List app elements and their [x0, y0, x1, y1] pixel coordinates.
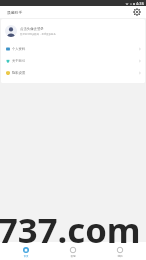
button[interactable]: 关于我们: [1, 55, 145, 67]
button[interactable]: 首页: [5, 242, 47, 257]
button[interactable]: 点击头像去登录: [1, 19, 145, 43]
staticText: 737.com: [0, 207, 141, 253]
button[interactable]: 个人资料: [1, 43, 145, 55]
staticText: 隐私设置: [12, 71, 26, 75]
button[interactable]: 我的: [99, 242, 141, 257]
staticText: 个人资料: [12, 47, 26, 51]
staticText: 我的: [117, 254, 123, 257]
staticText: 登录后可同步数据，享受更多服务: [20, 33, 56, 36]
button[interactable]: 隐私设置: [1, 67, 145, 79]
staticText: 首页: [23, 254, 29, 257]
button[interactable]: Settings: [132, 7, 142, 17]
staticText: 关于我们: [12, 59, 26, 63]
staticText: 4:36: [136, 1, 144, 6]
staticText: 发现: [70, 254, 76, 257]
button[interactable]: 发现: [52, 242, 94, 257]
staticText: 点击头像去登录: [20, 27, 44, 31]
staticText: 晨曦助手: [7, 10, 23, 15]
